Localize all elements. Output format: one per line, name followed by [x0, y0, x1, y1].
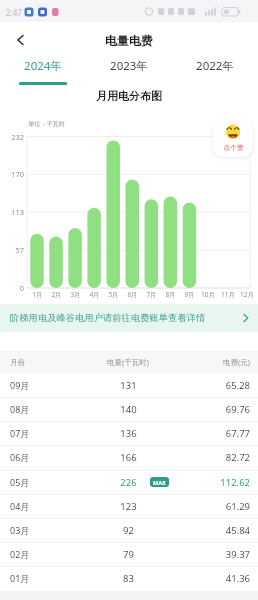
- staticText: 点个赞: [223, 143, 244, 152]
- staticText: 65.28: [225, 379, 250, 392]
- staticText: 3月: [70, 290, 81, 299]
- staticText: 232: [11, 132, 24, 142]
- staticText: 2023年: [110, 58, 148, 74]
- staticText: 79: [123, 548, 134, 561]
- staticText: 08月: [10, 403, 30, 415]
- staticText: 41.36: [225, 572, 250, 585]
- staticText: MAX: [153, 479, 166, 486]
- staticText: 113: [11, 207, 24, 217]
- staticText: 92: [123, 524, 134, 537]
- button[interactable]: [0, 421, 258, 445]
- staticText: 131: [120, 379, 137, 392]
- staticText: 83: [123, 572, 134, 585]
- staticText: 82.72: [225, 451, 250, 464]
- staticText: 61.29: [225, 500, 250, 513]
- staticText: 11月: [221, 290, 235, 299]
- staticText: 2:47: [6, 7, 22, 18]
- staticText: 166: [120, 451, 137, 464]
- staticText: 2月: [51, 290, 62, 299]
- button[interactable]: [0, 445, 258, 469]
- staticText: 电费(元): [223, 357, 250, 367]
- staticText: 0: [19, 283, 24, 293]
- staticText: 2024年: [24, 58, 62, 74]
- staticText: 01月: [10, 572, 30, 584]
- button[interactable]: [0, 494, 258, 518]
- staticText: 阶梯用电及峰谷电用户请前往电费账单查看详情: [10, 312, 206, 324]
- button[interactable]: [0, 373, 258, 397]
- staticText: 8月: [165, 290, 176, 299]
- staticText: 9月: [184, 290, 195, 299]
- button[interactable]: [0, 518, 258, 542]
- button[interactable]: [86, 56, 172, 86]
- staticText: 12月: [240, 290, 254, 299]
- staticText: 112.62: [220, 476, 250, 489]
- staticText: 136: [120, 427, 137, 440]
- button[interactable]: [6, 28, 32, 52]
- staticText: 123: [120, 500, 137, 513]
- staticText: 7月: [146, 290, 157, 299]
- staticText: 05月: [10, 476, 30, 488]
- staticText: 月用电分布图: [96, 89, 162, 103]
- staticText: 07月: [10, 427, 30, 439]
- staticText: 03月: [10, 524, 30, 536]
- staticText: 月份: [10, 358, 25, 367]
- staticText: 57: [15, 245, 24, 255]
- staticText: 4月: [89, 290, 100, 299]
- staticText: 10月: [201, 290, 215, 299]
- staticText: 1月: [32, 290, 43, 299]
- staticText: 单位：千瓦时: [28, 120, 66, 128]
- button[interactable]: [172, 56, 258, 86]
- staticText: 09月: [10, 379, 30, 391]
- staticText: 69.76: [225, 403, 250, 416]
- button[interactable]: [0, 566, 258, 590]
- staticText: 45.84: [225, 524, 250, 537]
- staticText: 39.37: [225, 548, 250, 561]
- button[interactable]: [0, 542, 258, 566]
- staticText: 170: [11, 169, 24, 179]
- staticText: 电量电费: [105, 33, 153, 48]
- button[interactable]: 点个赞: [213, 119, 253, 157]
- staticText: 6月: [127, 290, 138, 299]
- button[interactable]: [0, 56, 86, 86]
- staticText: 5月: [108, 290, 119, 299]
- staticText: 67.77: [225, 427, 250, 440]
- staticText: 04月: [10, 500, 30, 512]
- staticText: 2022年: [196, 58, 234, 74]
- staticText: 电量(千瓦时): [107, 357, 149, 367]
- staticText: 226: [120, 476, 137, 489]
- staticText: 06月: [10, 451, 30, 463]
- staticText: 140: [120, 403, 137, 416]
- staticText: 02月: [10, 548, 30, 560]
- button[interactable]: [0, 397, 258, 421]
- button[interactable]: [0, 469, 258, 493]
- button[interactable]: 阶梯用电及峰谷电用户请前往电费账单查看详情: [0, 304, 258, 332]
